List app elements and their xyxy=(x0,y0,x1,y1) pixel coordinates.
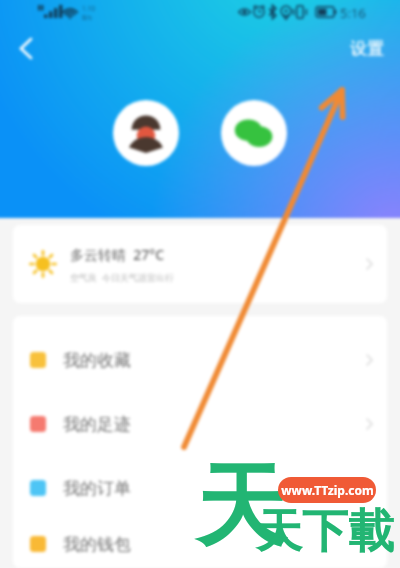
staticText: 多云转晴 27°C xyxy=(70,245,165,264)
staticText: B/s xyxy=(82,13,92,22)
staticText: 天 xyxy=(196,450,286,563)
staticText: 我的订单 xyxy=(63,478,131,499)
staticText: 我的足迹 xyxy=(63,414,131,435)
staticText: 天下載 xyxy=(256,503,394,561)
staticText: 5:16 xyxy=(340,4,366,22)
button[interactable]: 我的钱包 xyxy=(13,520,387,568)
staticText: 我的钱包 xyxy=(63,534,131,555)
button[interactable]: WeChat xyxy=(221,100,287,166)
staticText: www.TTzip.com xyxy=(281,482,374,498)
staticText: 空气良 今日天气适宜出行 xyxy=(70,271,174,283)
button[interactable]: 设置 xyxy=(342,32,392,65)
button[interactable]: 我的足迹 xyxy=(13,392,387,456)
staticText: 设置 xyxy=(350,38,384,59)
button[interactable]: 我的收藏 xyxy=(13,328,387,392)
button[interactable]: 多云转晴 27°C xyxy=(13,225,387,303)
button[interactable]: 我的订单 xyxy=(13,456,387,520)
button[interactable]: Back xyxy=(6,28,46,68)
staticText: 我的收藏 xyxy=(63,350,131,371)
staticText: 1.10 xyxy=(82,4,95,13)
button[interactable]: Profile avatar xyxy=(113,100,179,166)
